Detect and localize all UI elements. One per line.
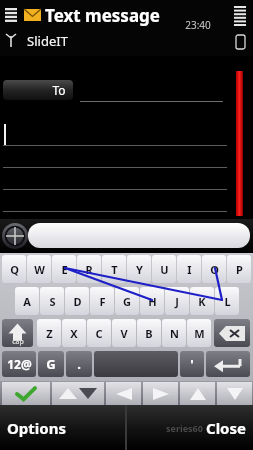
staticText: Text message: [45, 4, 160, 27]
button[interactable]: A: [15, 287, 39, 315]
button[interactable]: U: [152, 255, 176, 283]
button[interactable]: P: [227, 255, 251, 283]
button[interactable]: Page up and down: [52, 382, 104, 405]
button[interactable]: Settings: [2, 223, 28, 249]
staticText: C: [95, 326, 103, 341]
button[interactable]: ': [180, 351, 204, 377]
staticText: I: [187, 262, 192, 277]
staticText: K: [198, 294, 206, 309]
staticText: G: [46, 355, 56, 373]
button[interactable]: W: [27, 255, 51, 283]
staticText: SlideIT: [27, 32, 68, 50]
button[interactable]: Enter: [206, 351, 250, 377]
staticText: D: [73, 294, 82, 309]
staticText: S: [49, 294, 56, 309]
staticText: A: [23, 294, 31, 309]
staticText: ': [190, 355, 194, 373]
button[interactable]: F: [90, 287, 114, 315]
button[interactable]: I: [177, 255, 201, 283]
button[interactable]: V: [112, 319, 136, 347]
button[interactable]: H: [140, 287, 164, 315]
button[interactable]: To: [3, 80, 73, 100]
button[interactable]: series60: [127, 405, 253, 450]
staticText: O: [210, 262, 219, 277]
button[interactable]: S: [40, 287, 64, 315]
button[interactable]: .: [66, 351, 92, 377]
button[interactable]: E: [52, 255, 76, 283]
button[interactable]: Space: [94, 351, 178, 377]
staticText: Q: [10, 262, 19, 277]
staticText: H: [148, 294, 157, 309]
staticText: U: [160, 262, 169, 277]
staticText: X: [70, 326, 78, 341]
staticText: J: [175, 294, 179, 309]
staticText: B: [145, 326, 153, 341]
staticText: .: [77, 355, 81, 373]
button[interactable]: Q: [2, 255, 26, 283]
button[interactable]: O: [202, 255, 226, 283]
staticText: L: [224, 294, 231, 309]
button[interactable]: C: [87, 319, 111, 347]
button[interactable]: J: [165, 287, 189, 315]
button[interactable]: Z: [37, 319, 61, 347]
button[interactable]: G: [38, 351, 64, 377]
button[interactable]: Y: [127, 255, 151, 283]
staticText: N: [170, 326, 179, 341]
staticText: Close: [206, 418, 246, 438]
staticText: 12@: [7, 356, 32, 372]
staticText: G: [123, 294, 131, 309]
staticText: 23:40: [185, 18, 211, 32]
button[interactable]: Up: [180, 382, 215, 405]
button[interactable]: T: [102, 255, 126, 283]
button[interactable]: 12@: [2, 351, 36, 377]
button[interactable]: R: [77, 255, 101, 283]
button[interactable]: K: [190, 287, 214, 315]
button[interactable]: B: [137, 319, 161, 347]
staticText: M: [194, 326, 205, 341]
button[interactable]: G: [115, 287, 139, 315]
staticText: W: [34, 262, 45, 277]
button[interactable]: M: [187, 319, 211, 347]
button[interactable]: Backspace: [214, 319, 250, 347]
staticText: V: [120, 326, 128, 341]
button[interactable]: N: [162, 319, 186, 347]
button[interactable]: Left: [106, 382, 141, 405]
staticText: cap: [12, 337, 24, 347]
staticText: R: [85, 262, 93, 277]
button[interactable]: L: [215, 287, 239, 315]
staticText: F: [99, 294, 106, 309]
button[interactable]: Right: [143, 382, 178, 405]
staticText: series60: [166, 422, 203, 434]
staticText: To: [52, 82, 66, 98]
staticText: T: [111, 262, 118, 277]
button[interactable]: Down: [217, 382, 252, 405]
button[interactable]: X: [62, 319, 86, 347]
staticText: E: [61, 262, 68, 277]
staticText: P: [236, 262, 243, 277]
button[interactable]: cap: [2, 319, 33, 347]
staticText: Z: [46, 326, 53, 341]
staticText: Y: [136, 262, 143, 277]
button[interactable]: Accept: [2, 382, 50, 405]
button[interactable]: D: [65, 287, 89, 315]
button[interactable]: Options: [0, 405, 125, 450]
button[interactable]: [28, 223, 250, 248]
staticText: Options: [7, 418, 66, 438]
